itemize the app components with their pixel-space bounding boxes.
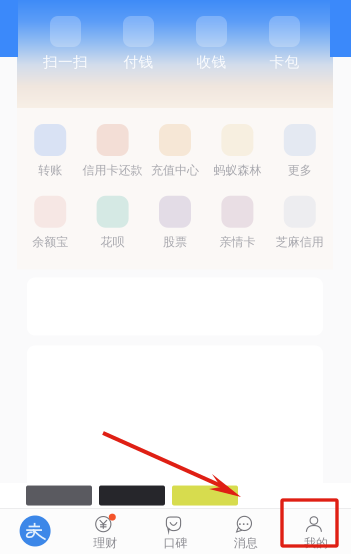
staticText: 股票 [163, 235, 187, 249]
button[interactable]: 充值中心 [144, 124, 206, 178]
staticText: 付钱 [123, 53, 153, 71]
button[interactable]: 转账 [19, 124, 81, 178]
button[interactable]: 收钱 [175, 16, 248, 71]
staticText: 卡包 [269, 53, 299, 71]
staticText: 更多 [288, 163, 312, 178]
button[interactable]: 芝麻信用 [269, 196, 331, 249]
button[interactable]: 花呗 [81, 196, 144, 249]
staticText: 芝麻信用 [276, 235, 324, 249]
button[interactable]: 支付宝 首页 [0, 508, 70, 554]
staticText: 我的 [304, 536, 328, 550]
staticText: 亲情卡 [219, 235, 255, 249]
staticText: 消息 [234, 536, 258, 550]
button[interactable]: 信用卡还款 [81, 124, 144, 178]
button[interactable]: 余额宝 [19, 196, 81, 249]
button[interactable]: 卡包 [248, 16, 321, 71]
button[interactable]: 股票 [144, 196, 206, 249]
button[interactable]: 消息 [211, 508, 281, 554]
staticText: 扫一扫 [43, 53, 88, 71]
button[interactable]: 亲情卡 [206, 196, 269, 249]
staticText: 充值中心 [151, 163, 199, 178]
button[interactable]: 扫一扫 [29, 16, 102, 71]
staticText: 口碑 [163, 536, 187, 550]
button[interactable]: 付钱 [102, 16, 175, 71]
staticText: 转账 [38, 163, 62, 178]
button[interactable]: 蚂蚁森林 [206, 124, 269, 178]
staticText: 信用卡还款 [83, 163, 143, 178]
staticText: 蚂蚁森林 [213, 163, 261, 178]
button[interactable]: 更多 [269, 124, 331, 178]
staticText: 花呗 [101, 235, 125, 249]
staticText: 收钱 [196, 53, 226, 71]
button[interactable]: 我的 [281, 508, 351, 554]
staticText: 理财 [93, 536, 117, 550]
button[interactable]: 理财 [70, 508, 140, 554]
button[interactable]: 口碑 [140, 508, 211, 554]
staticText: 余额宝 [32, 235, 68, 249]
